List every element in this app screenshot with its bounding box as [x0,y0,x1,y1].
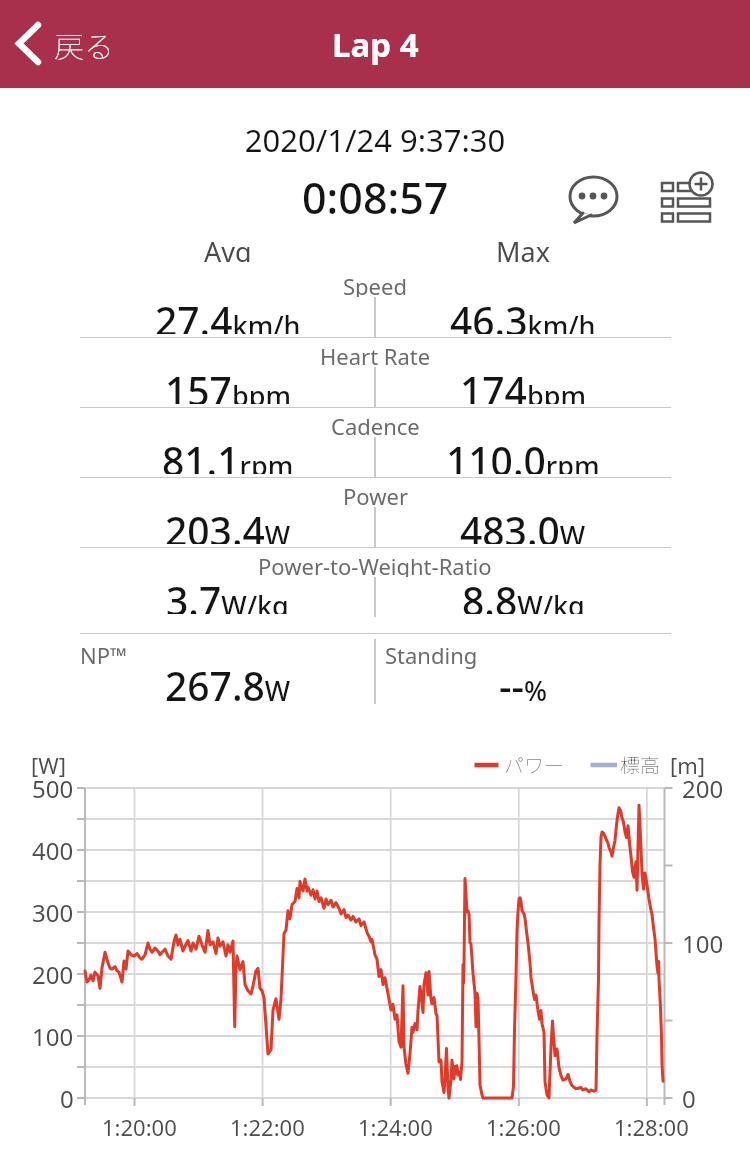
staticText: 0:08:57 [302,168,449,227]
staticText: 200 [682,772,724,805]
staticText: [m] [670,750,706,780]
staticText: 1:26:00 [486,1112,561,1142]
staticText: 1:22:00 [230,1112,305,1142]
staticText: 標高 [620,750,660,779]
button[interactable] [567,172,617,222]
staticText: 100 [682,927,724,960]
staticText: 46.3km/h [450,294,596,334]
staticText: 0 [60,1082,74,1115]
staticText: 483.0W [460,504,586,544]
staticText: Power [343,481,408,507]
staticText: 3.7W/kg [166,574,289,614]
staticText: 200 [32,958,74,991]
staticText: 0 [682,1082,696,1115]
staticText: 81.1rpm [162,434,294,474]
staticText: Speed [343,271,407,297]
staticText: Avg [204,233,252,262]
staticText: 110.0rpm [446,434,600,474]
staticText: Heart Rate [320,341,431,367]
staticText: 100 [32,1020,74,1053]
staticText: 1:28:00 [614,1112,689,1142]
staticText: 1:20:00 [102,1112,177,1142]
staticText: Lap 4 [332,22,419,67]
staticText: NP™ [80,640,128,670]
staticText: 267.8W [165,659,291,704]
staticText: Cadence [331,411,420,437]
staticText: 174bpm [460,364,586,404]
staticText: 8.8W/kg [462,574,585,614]
staticText: 300 [32,896,74,929]
button[interactable]: 戻る [0,14,124,74]
staticText: 戻る [54,23,114,66]
staticText: 1:24:00 [358,1112,433,1142]
staticText: Standing [385,640,478,670]
staticText: [W] [31,750,66,780]
staticText: 203.4W [165,504,291,544]
staticText: 2020/1/24 9:37:30 [0,119,750,161]
staticText: Power-to-Weight-Ratio [258,551,492,577]
staticText: Max [496,233,550,262]
staticText: パワー [504,750,564,779]
staticText: 500 [32,772,74,805]
button[interactable] [661,172,713,222]
staticText: 157bpm [165,364,291,404]
staticText: --% [499,659,548,704]
staticText: 27.4km/h [155,294,301,334]
staticText: 400 [32,834,74,867]
